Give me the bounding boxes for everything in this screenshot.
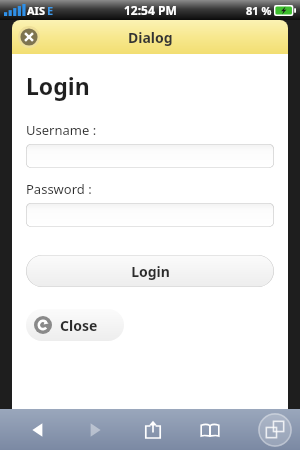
staticText: Password : bbox=[26, 180, 92, 198]
button[interactable]: Tabs bbox=[258, 413, 292, 447]
button[interactable] bbox=[26, 203, 274, 227]
button[interactable]: Share bbox=[133, 413, 173, 447]
button[interactable]: Bookmarks bbox=[190, 413, 230, 447]
button[interactable]: Login bbox=[26, 255, 274, 287]
button[interactable]: Forward bbox=[75, 413, 115, 447]
button[interactable]: Close bbox=[26, 309, 124, 341]
staticText: Login bbox=[131, 262, 170, 281]
staticText: AIS bbox=[27, 3, 45, 18]
button[interactable]: Back bbox=[18, 413, 58, 447]
staticText: Username : bbox=[26, 121, 97, 139]
button[interactable] bbox=[26, 144, 274, 168]
staticText: Dialog bbox=[128, 28, 173, 47]
staticText: Close bbox=[60, 316, 98, 335]
staticText: 81 % bbox=[246, 3, 272, 18]
button[interactable]: Close dialog bbox=[18, 26, 40, 48]
staticText: 12:54 PM bbox=[124, 2, 177, 18]
staticText: Login bbox=[26, 70, 90, 101]
staticText: E bbox=[47, 3, 54, 18]
